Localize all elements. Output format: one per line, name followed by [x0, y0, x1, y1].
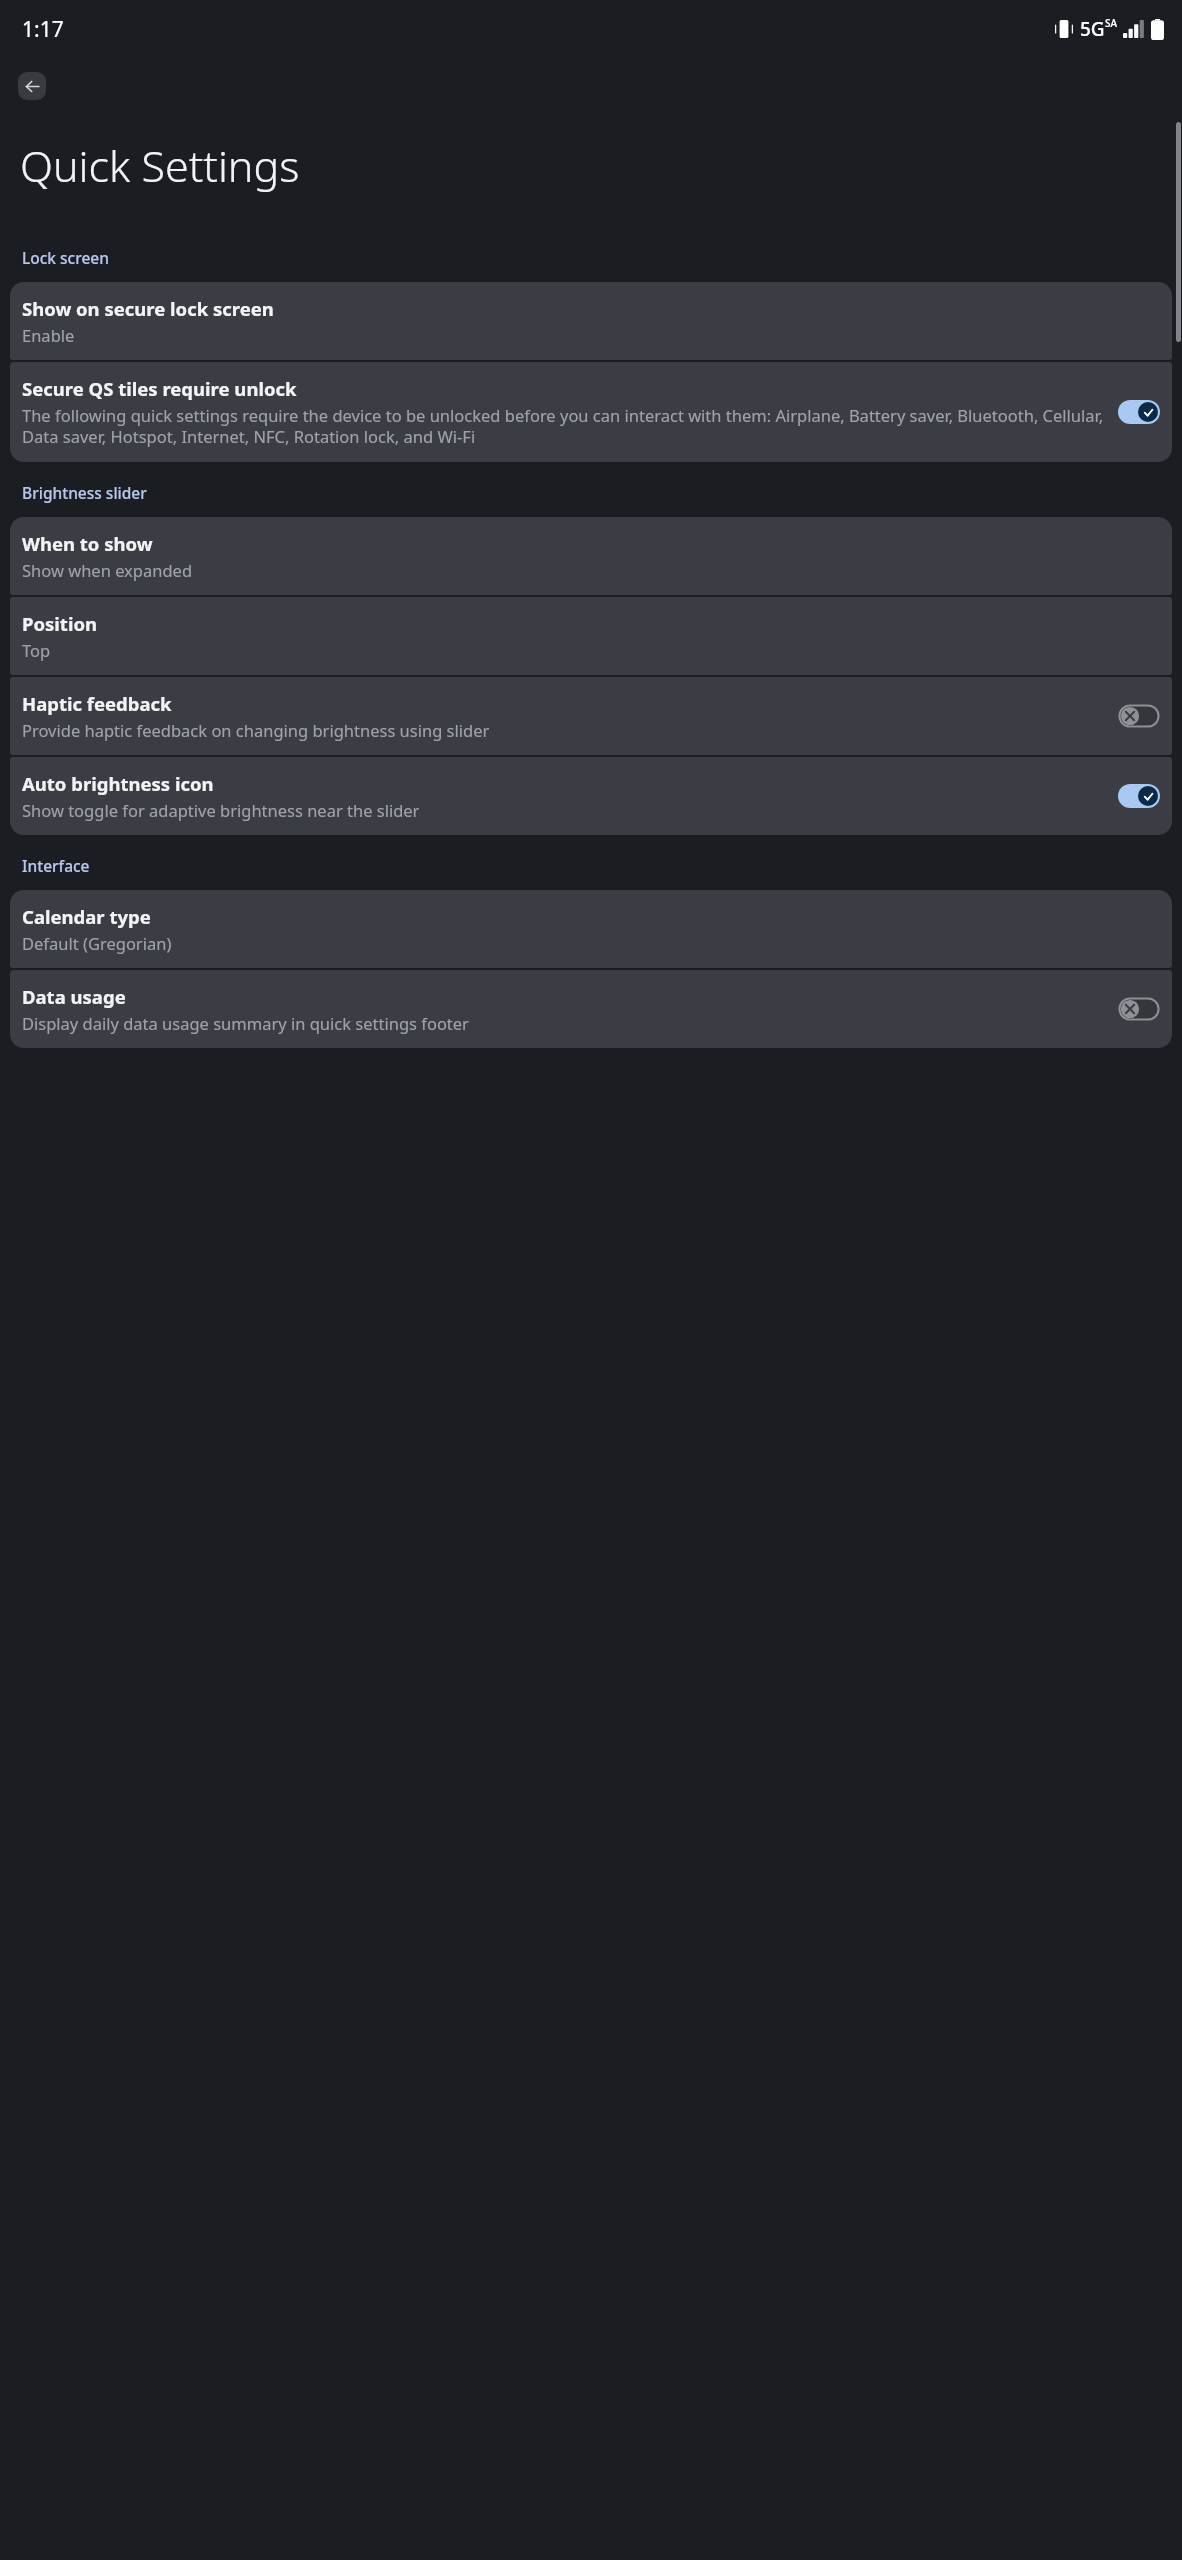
staticText: Auto brightness icon [22, 771, 214, 796]
staticText: Show on secure lock screen [22, 296, 274, 321]
staticText: 5G [1080, 16, 1105, 42]
button[interactable]: Haptic feedback [10, 677, 1172, 755]
staticText: Data usage [22, 984, 126, 1009]
button[interactable]: Position [10, 597, 1172, 675]
staticText: Position [22, 611, 98, 636]
staticText: Top [22, 639, 51, 661]
button[interactable]: Toggle off [1118, 997, 1160, 1021]
button[interactable]: Show on secure lock screen [10, 282, 1172, 360]
button[interactable]: Secure QS tiles require unlock [10, 362, 1172, 462]
staticText: Interface [22, 855, 90, 876]
staticText: Lock screen [22, 247, 109, 268]
staticText: When to show [22, 531, 153, 556]
button[interactable]: When to show [10, 517, 1172, 595]
staticText: Brightness slider [22, 482, 147, 503]
staticText: Display daily data usage summary in quic… [22, 1012, 469, 1034]
button[interactable]: Auto brightness icon [10, 757, 1172, 835]
staticText: Show toggle for adaptive brightness near… [22, 799, 420, 821]
button[interactable]: Toggle on [1118, 400, 1160, 424]
staticText: Haptic feedback [22, 691, 172, 716]
staticText: SA [1105, 16, 1118, 30]
button[interactable]: Calendar type [10, 890, 1172, 968]
staticText: Provide haptic feedback on changing brig… [22, 719, 490, 741]
button[interactable]: Toggle off [1118, 704, 1160, 728]
staticText: The following quick settings require the… [22, 404, 1108, 448]
staticText: Enable [22, 324, 75, 346]
staticText: Show when expanded [22, 559, 193, 581]
staticText: Secure QS tiles require unlock [22, 376, 297, 401]
staticText: Quick Settings [20, 136, 300, 195]
staticText: 1:17 [22, 15, 64, 44]
button[interactable]: Toggle on [1118, 784, 1160, 808]
staticText: Default (Gregorian) [22, 932, 172, 954]
staticText: Calendar type [22, 904, 151, 929]
button[interactable]: Data usage [10, 970, 1172, 1048]
button[interactable]: Back [18, 72, 46, 100]
